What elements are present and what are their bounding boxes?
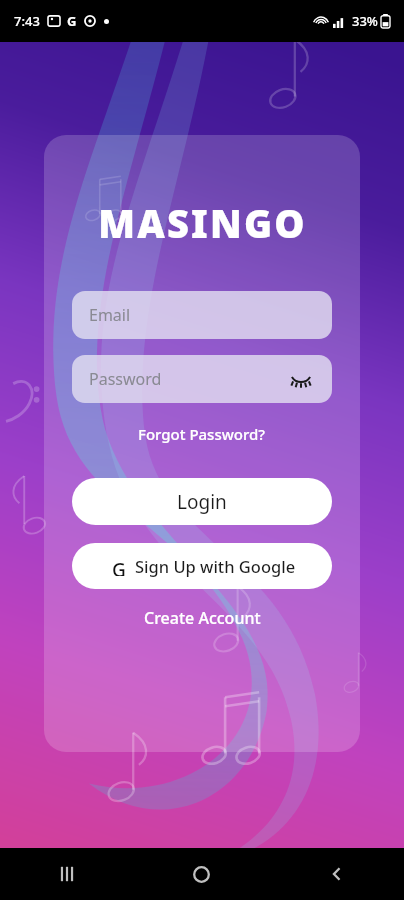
- staticText: G: [112, 557, 126, 576]
- button[interactable]: Create Account: [138, 604, 267, 632]
- staticText: G: [67, 12, 77, 30]
- staticText: Password: [89, 368, 287, 390]
- button[interactable]: Password: [72, 355, 332, 403]
- button[interactable]: Forgot Password?: [132, 422, 272, 446]
- staticText: Login: [177, 489, 227, 515]
- staticText: Forgot Password?: [138, 424, 266, 444]
- button[interactable]: Show password: [287, 365, 315, 393]
- staticText: Create Account: [144, 607, 261, 629]
- staticText: Sign Up with Google: [135, 555, 296, 577]
- button[interactable]: Recent apps: [0, 848, 134, 900]
- staticText: 7:43: [14, 12, 40, 30]
- button[interactable]: Back: [269, 848, 404, 900]
- staticText: Email: [89, 304, 315, 326]
- staticText: 33%: [352, 12, 378, 30]
- button[interactable]: Login: [72, 478, 332, 525]
- button[interactable]: Email: [72, 291, 332, 339]
- staticText: MASINGO: [98, 197, 307, 249]
- button[interactable]: Home: [134, 848, 269, 900]
- button[interactable]: G: [72, 543, 332, 589]
